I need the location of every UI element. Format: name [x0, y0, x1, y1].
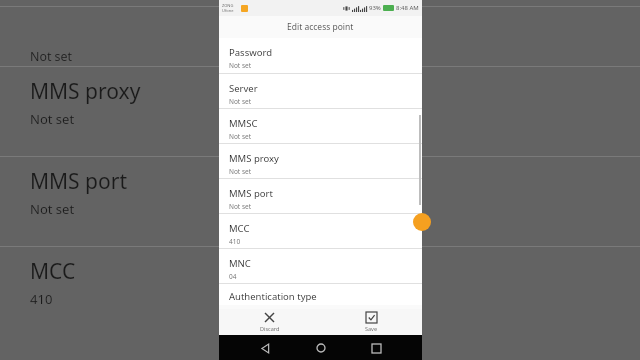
- staticText: MMS port: [229, 187, 273, 200]
- staticText: Password: [229, 46, 272, 59]
- button[interactable]: MMSC: [219, 108, 422, 143]
- staticText: MCC: [229, 222, 250, 235]
- staticText: Not set: [30, 200, 75, 218]
- staticText: Not set: [229, 97, 252, 106]
- staticText: 8:48 AM: [396, 4, 419, 12]
- button[interactable]: Server: [219, 73, 422, 108]
- staticText: 04: [229, 272, 237, 281]
- staticText: Not set: [229, 167, 252, 176]
- staticText: Not set: [229, 61, 252, 70]
- button[interactable]: Discard: [219, 309, 320, 335]
- staticText: Not set: [229, 132, 252, 141]
- staticText: MMS proxy: [30, 77, 141, 106]
- button[interactable]: Back: [255, 338, 275, 358]
- staticText: 410: [229, 237, 241, 246]
- staticText: 93%: [369, 4, 381, 12]
- staticText: Discard: [260, 325, 280, 332]
- staticText: MMS proxy: [229, 152, 279, 165]
- staticText: MNC: [229, 257, 251, 270]
- staticText: Not set: [229, 202, 252, 211]
- button[interactable]: MMS port: [219, 178, 422, 213]
- staticText: MMSC: [229, 117, 258, 130]
- button[interactable]: MMS proxy: [219, 143, 422, 178]
- button[interactable]: Recents: [366, 338, 386, 358]
- staticText: MMS port: [30, 167, 127, 196]
- staticText: Edit access point: [287, 21, 354, 33]
- staticText: 410: [30, 290, 53, 308]
- button[interactable]: MCC: [219, 213, 422, 248]
- staticText: Server: [229, 82, 258, 95]
- button[interactable]: Authentication type: [219, 283, 422, 305]
- button[interactable]: Password: [219, 38, 422, 73]
- staticText: Authentication type: [229, 290, 317, 303]
- staticText: MCC: [30, 257, 76, 286]
- staticText: Ufone: [222, 8, 234, 13]
- staticText: Not set: [30, 48, 73, 65]
- staticText: Not set: [30, 110, 75, 128]
- button[interactable]: MNC: [219, 248, 422, 283]
- button[interactable]: Home: [311, 338, 331, 358]
- staticText: ZONG: [222, 3, 234, 8]
- staticText: Save: [365, 325, 378, 332]
- button[interactable]: Save: [320, 309, 422, 335]
